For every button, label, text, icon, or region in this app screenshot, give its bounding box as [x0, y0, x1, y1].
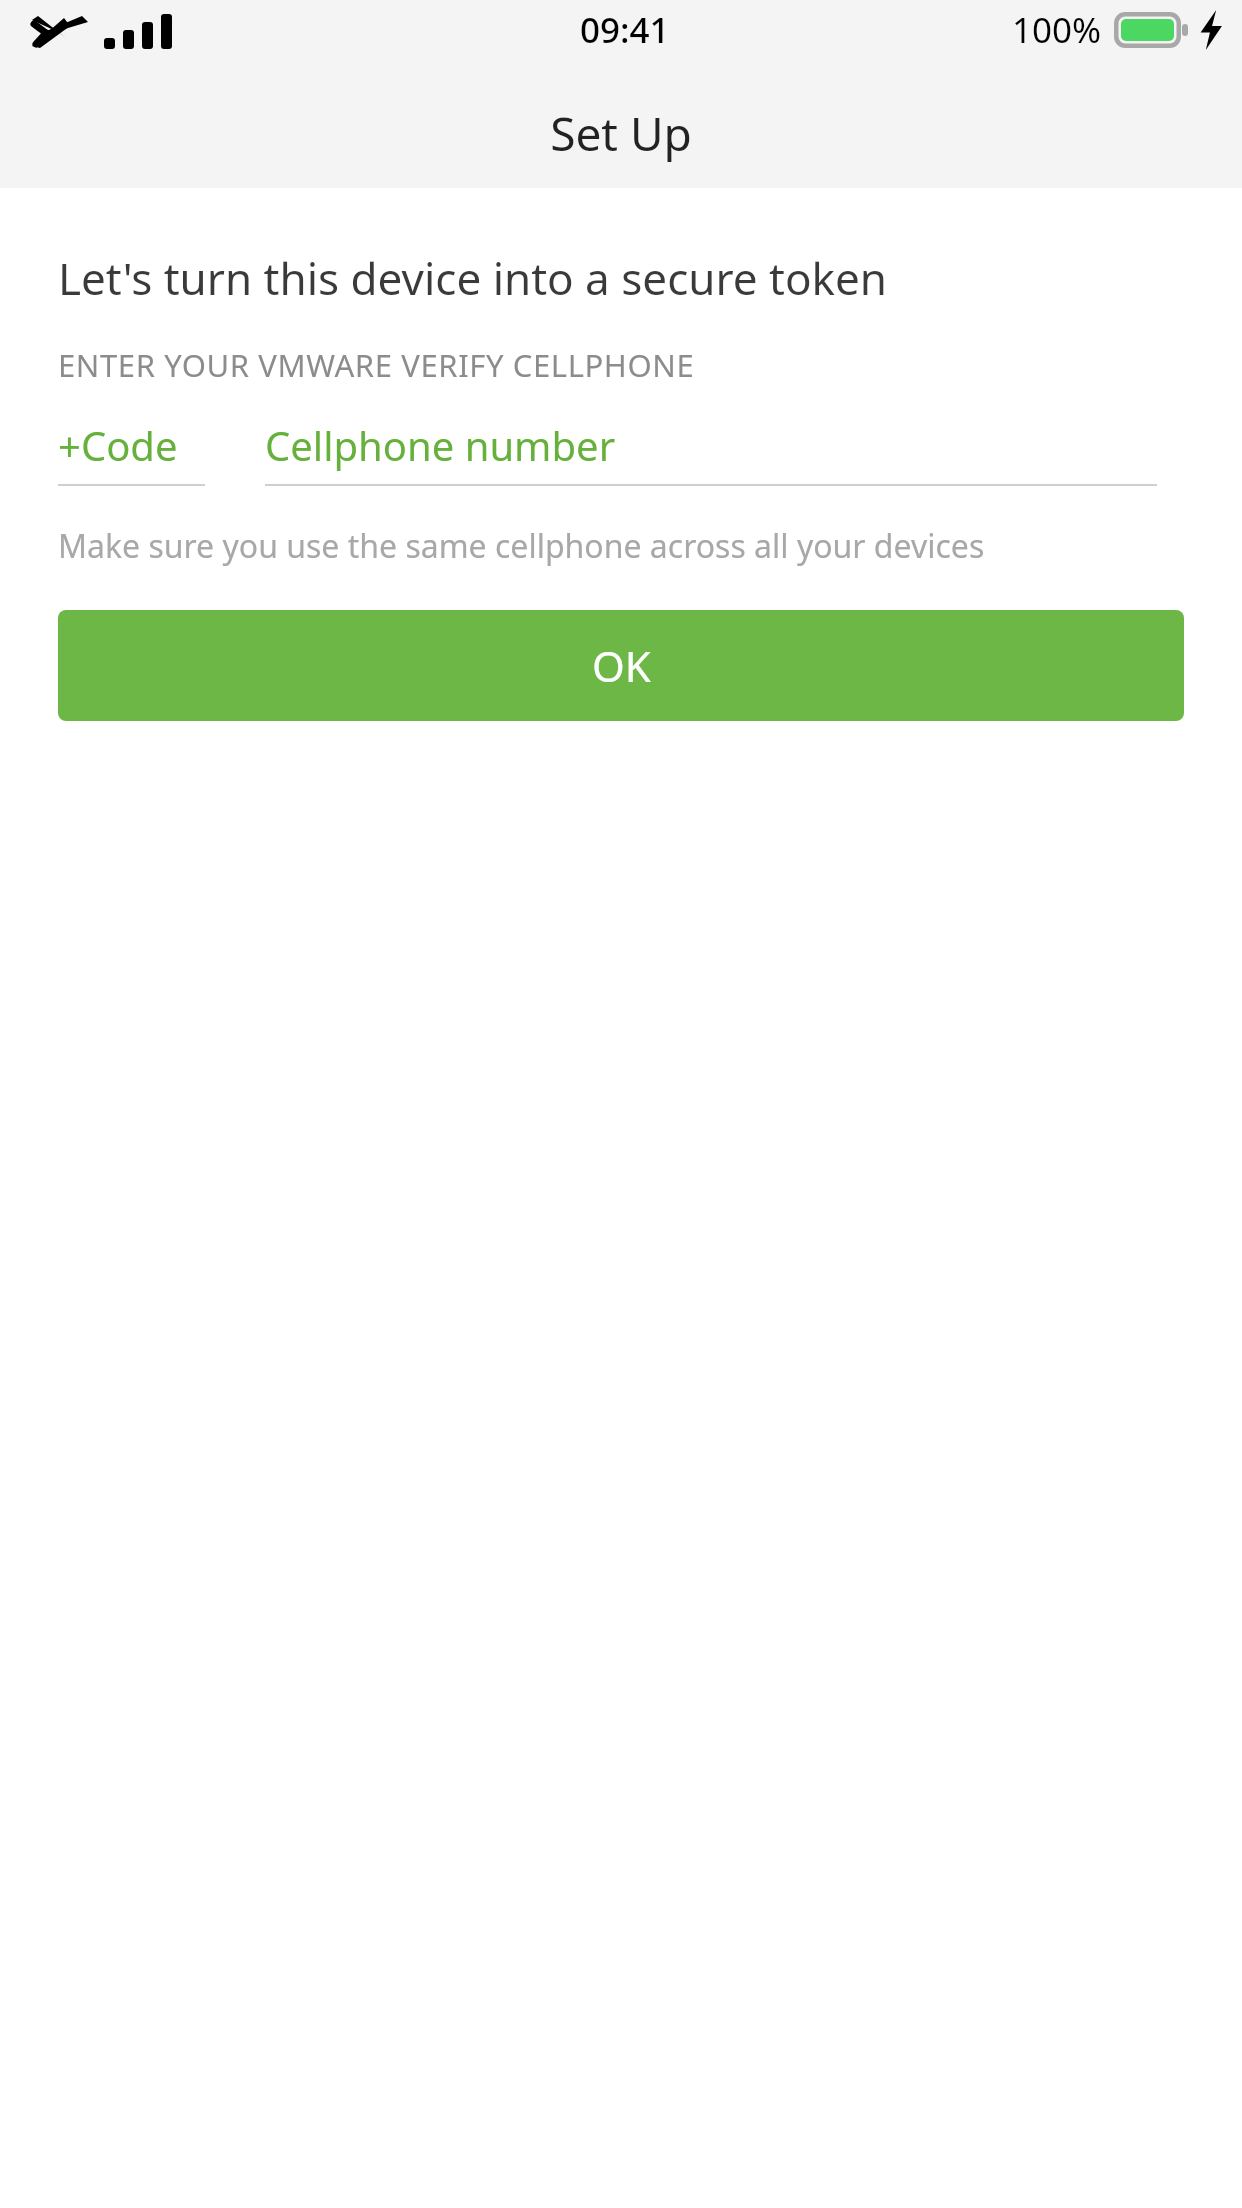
button[interactable]: Cellphone number: [265, 418, 1157, 486]
staticText: OK: [592, 637, 651, 694]
staticText: Cellphone number: [265, 418, 616, 472]
staticText: +Code: [58, 418, 178, 472]
staticText: Make sure you use the same cellphone acr…: [58, 524, 985, 568]
other: Charging: [1198, 10, 1224, 50]
staticText: Let's turn this device into a secure tok…: [58, 248, 888, 308]
other: Airplane mode and signal strength: [18, 8, 178, 52]
button[interactable]: OK: [58, 610, 1184, 721]
staticText: 09:41: [580, 6, 670, 54]
staticText: ENTER YOUR VMWARE VERIFY CELLPHONE: [58, 344, 695, 386]
staticText: 100%: [1012, 6, 1102, 54]
other: Battery full, charging: [1114, 12, 1188, 48]
button[interactable]: +Code: [58, 418, 205, 486]
staticText: Set Up: [0, 102, 1242, 165]
